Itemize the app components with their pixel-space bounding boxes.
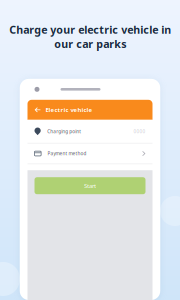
button[interactable]: Payment method xyxy=(27,143,152,163)
staticText: Charging point xyxy=(47,128,81,135)
button[interactable]: Charging point xyxy=(27,120,152,143)
staticText: Payment method xyxy=(48,150,87,157)
staticText: Electric vehicle xyxy=(45,106,92,114)
button[interactable]: Start xyxy=(34,177,145,194)
staticText: Charge your electric vehicle in our car … xyxy=(9,22,171,51)
button[interactable]: Electric vehicle xyxy=(27,100,152,120)
staticText: Start xyxy=(84,182,96,190)
staticText: 0000 xyxy=(133,128,145,135)
